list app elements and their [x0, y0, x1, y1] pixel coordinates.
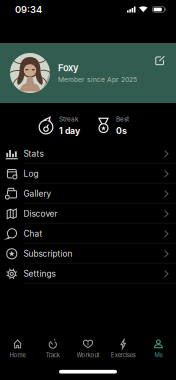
staticText: Foxy — [58, 62, 78, 74]
staticText: Chat — [23, 229, 42, 239]
staticText: 1 day — [59, 126, 80, 136]
staticText: Workout — [76, 351, 99, 359]
staticText: Settings — [23, 269, 55, 279]
staticText: Track — [46, 351, 60, 359]
staticText: Subscription — [23, 249, 72, 259]
staticText: 09:34 — [15, 4, 42, 15]
button[interactable]: Edit profile — [155, 55, 165, 66]
staticText: Member since Apr 2025 — [58, 76, 137, 84]
staticText: Log — [23, 169, 38, 179]
button[interactable]: Discover — [0, 203, 176, 223]
staticText: Home — [10, 351, 26, 359]
button[interactable]: Home — [0, 339, 35, 359]
staticText: 0s — [116, 126, 127, 136]
button[interactable]: Workout — [70, 339, 106, 359]
button[interactable]: Exercises — [106, 339, 141, 359]
staticText: Streak — [59, 115, 79, 123]
button[interactable]: Log — [0, 163, 176, 183]
staticText: Best — [116, 115, 129, 123]
button[interactable]: Track — [35, 339, 70, 359]
button[interactable]: Stats — [0, 143, 176, 163]
button[interactable]: Subscription — [0, 243, 176, 263]
button[interactable]: Chat — [0, 223, 176, 243]
staticText: Exercises — [111, 351, 136, 359]
staticText: Stats — [23, 149, 43, 159]
staticText: Me — [154, 351, 162, 359]
button[interactable]: Me — [141, 339, 176, 359]
staticText: Discover — [23, 209, 57, 219]
button[interactable]: Gallery — [0, 183, 176, 203]
button[interactable]: Settings — [0, 263, 176, 283]
staticText: Gallery — [23, 189, 51, 199]
